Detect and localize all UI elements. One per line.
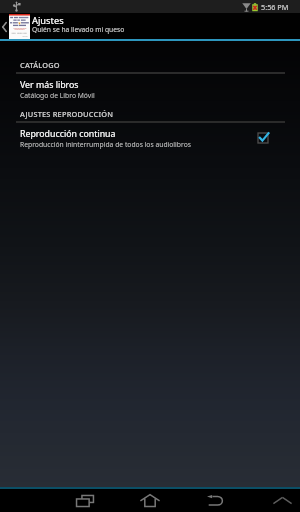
button[interactable]: Back xyxy=(0,13,9,41)
button[interactable]: Home xyxy=(129,489,171,512)
button[interactable]: Reproducción continua xyxy=(0,123,300,153)
button[interactable]: Expand xyxy=(261,489,300,512)
staticText: CATÁLOGO xyxy=(20,60,60,70)
staticText: Ver más libros xyxy=(20,79,79,91)
staticText: Reproducción continua xyxy=(20,128,116,140)
staticText: 5:56 PM xyxy=(261,2,289,12)
button[interactable]: Ver más libros xyxy=(0,74,300,104)
button[interactable]: Toggle xyxy=(254,129,272,147)
staticText: Quién se ha llevado mi queso xyxy=(32,25,125,34)
staticText: Catálogo de Libro Móvil xyxy=(20,91,95,100)
button[interactable]: Back xyxy=(194,489,236,512)
staticText: Ajustes xyxy=(32,14,64,27)
button[interactable]: Recents xyxy=(64,489,106,512)
staticText: Reproducción ininterrumpida de todos los… xyxy=(20,140,191,149)
staticText: AJUSTES REPRODUCCIÓN xyxy=(20,109,114,119)
